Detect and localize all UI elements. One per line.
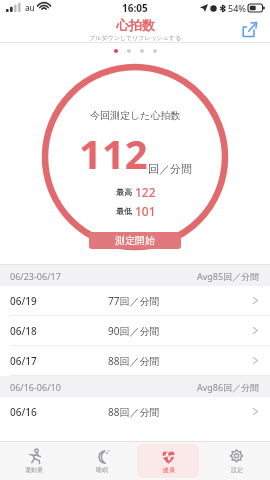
staticText: 54% <box>228 2 246 14</box>
staticText: 06/18 <box>10 324 37 338</box>
staticText: 16:05 <box>122 1 148 15</box>
staticText: 06/16-06/10 <box>10 381 61 393</box>
staticText: 06/23-06/17 <box>10 270 61 282</box>
staticText: 06/19 <box>10 294 37 308</box>
staticText: Avg85回／分間 <box>197 270 260 282</box>
staticText: 88回／分間 <box>108 405 160 419</box>
staticText: 心拍数 <box>116 17 155 33</box>
staticText: 122 <box>135 184 156 200</box>
staticText: 設定 <box>231 466 243 474</box>
staticText: 101 <box>135 203 156 219</box>
button[interactable]: 06/19 <box>0 286 270 316</box>
button[interactable]: 運動量 <box>3 444 65 478</box>
button[interactable]: 測定開始 <box>89 232 181 249</box>
staticText: 112 <box>79 126 148 180</box>
staticText: Avg86回／分間 <box>197 381 260 393</box>
button[interactable]: 設定 <box>205 444 267 478</box>
staticText: 77回／分間 <box>108 294 160 308</box>
staticText: プルダウンしてリフレッシュする <box>89 34 182 42</box>
staticText: 回／分間 <box>148 162 192 176</box>
staticText: 健康 <box>163 466 175 474</box>
staticText: 88回／分間 <box>108 354 160 368</box>
staticText: 最高 <box>116 187 132 197</box>
staticText: 今回測定した心拍数 <box>90 109 181 122</box>
staticText: au <box>25 2 35 13</box>
button[interactable]: 06/18 <box>0 316 270 346</box>
button[interactable]: 06/17 <box>0 346 270 376</box>
staticText: 睡眠 <box>96 466 108 474</box>
staticText: 06/17 <box>10 354 37 368</box>
staticText: 最低 <box>116 206 132 216</box>
staticText: 測定開始 <box>115 234 155 247</box>
button[interactable]: Share <box>238 18 260 40</box>
button[interactable]: 06/16 <box>0 397 270 426</box>
staticText: 06/16 <box>10 405 37 419</box>
button[interactable]: 睡眠 <box>70 444 132 478</box>
button[interactable]: 健康 <box>137 444 199 478</box>
staticText: 90回／分間 <box>108 324 160 338</box>
staticText: 運動量 <box>25 466 43 474</box>
